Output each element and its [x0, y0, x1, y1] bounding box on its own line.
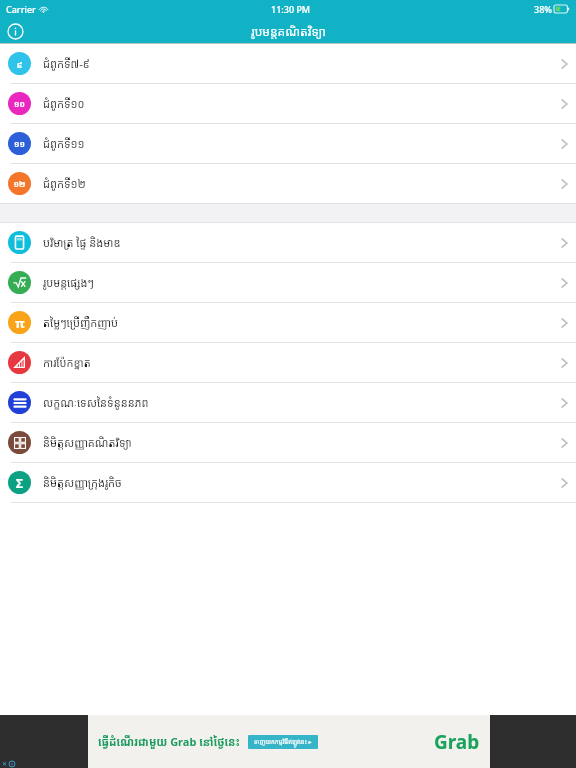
- button[interactable]: Information: [4, 20, 26, 42]
- button[interactable]: លក្ខណៈទេសនៃទំនូននភព: [0, 383, 576, 422]
- button[interactable]: ១១: [0, 124, 576, 163]
- button[interactable]: ការប៉ែកខ្នាត: [0, 343, 576, 382]
- staticText: លក្ខណៈទេសនៃទំនូននភព: [43, 395, 149, 410]
- staticText: និមិត្តសញ្ញាក្រុងរូកិច: [43, 475, 122, 490]
- staticText: ជំពូកទី១០: [43, 96, 85, 111]
- button[interactable]: π: [0, 303, 576, 342]
- staticText: π: [15, 314, 25, 332]
- staticText: ១២: [13, 178, 26, 189]
- staticText: ✕: [2, 760, 8, 767]
- staticText: ការប៉ែកខ្នាត: [43, 355, 91, 370]
- staticText: Carrier: [6, 3, 36, 15]
- button[interactable]: ៩: [0, 44, 576, 83]
- staticText: រូបមន្តគណិតវិទ្យា: [251, 23, 326, 39]
- button[interactable]: Σ: [0, 463, 576, 502]
- staticText: ជំពូកទី១២: [43, 176, 86, 191]
- button[interactable]: បរិមាត្រ ផ្ទៃ និងមាឌ: [0, 223, 576, 262]
- button[interactable]: រូបមន្តផ្សេងៗ: [0, 263, 576, 302]
- staticText: 38%: [534, 3, 552, 15]
- staticText: ធ្វើដំណើរជាមួយ Grab នៅថ្ងៃនេះ: [98, 734, 240, 749]
- button[interactable]: ១២: [0, 164, 576, 203]
- button[interactable]: និមិត្តសញ្ញាគណិតវិទ្យា: [0, 423, 576, 462]
- staticText: ១១: [14, 138, 25, 149]
- staticText: រូបមន្តផ្សេងៗ: [43, 275, 95, 290]
- staticText: តម្លៃៗប្រើញឹកញាប់: [43, 315, 118, 330]
- staticText: ជំពូកទី៧-៩: [43, 56, 90, 71]
- staticText: ទាញយកកម្មវិធីឥឡូវនេះ ▸: [254, 738, 312, 746]
- staticText: Σ: [16, 475, 23, 491]
- staticText: Grab: [434, 729, 480, 755]
- staticText: ១០: [14, 98, 25, 109]
- staticText: 11:30 PM: [271, 3, 311, 15]
- staticText: និមិត្តសញ្ញាគណិតវិទ្យា: [43, 435, 132, 450]
- staticText: បរិមាត្រ ផ្ទៃ និងមាឌ: [43, 235, 121, 250]
- button[interactable]: ទាញយកកម្មវិធីឥឡូវនេះ ▸: [248, 735, 318, 749]
- button[interactable]: ១០: [0, 84, 576, 123]
- staticText: ជំពូកទី១១: [43, 136, 85, 151]
- staticText: ៩: [16, 58, 23, 70]
